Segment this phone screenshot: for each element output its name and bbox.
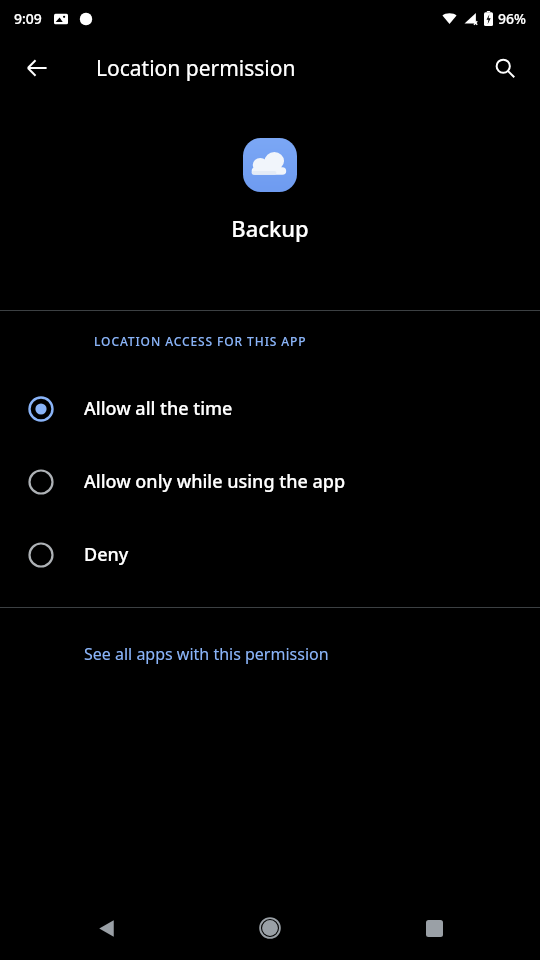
button[interactable]: See all apps with this permission [0,608,540,700]
staticText: See all apps with this permission [84,643,329,665]
staticText: Deny [84,542,129,567]
button[interactable]: Allow only while using the app [0,445,540,518]
button[interactable]: Recents [408,902,460,954]
button[interactable]: Deny [0,518,540,591]
button[interactable]: Back [80,902,132,954]
staticText: LOCATION ACCESS FOR THIS APP [94,333,307,349]
staticText: 96% [498,9,526,28]
button[interactable]: Home [244,902,296,954]
staticText: Allow only while using the app [84,469,346,494]
button[interactable]: Search [481,44,529,92]
staticText: 9:09 [14,9,42,28]
button[interactable]: Back [13,44,61,92]
staticText: Backup [231,213,309,243]
staticText: Location permission [96,54,296,83]
staticText: Allow all the time [84,396,233,421]
button[interactable]: Allow all the time [0,372,540,445]
